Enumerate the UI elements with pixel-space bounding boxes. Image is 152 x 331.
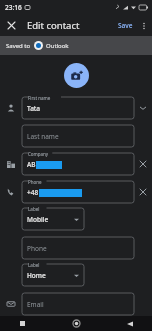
staticText: 23:16	[5, 3, 22, 12]
button[interactable]: Phone	[22, 237, 134, 259]
staticText: First name	[28, 95, 51, 101]
staticText: Label	[28, 262, 40, 268]
button[interactable]: Recent apps	[16, 317, 29, 330]
staticText: Phone	[28, 179, 42, 185]
button[interactable]: Home	[70, 317, 83, 330]
staticText: Company	[28, 151, 49, 157]
staticText: Outlook	[46, 42, 69, 50]
staticText: Mobile	[27, 215, 49, 224]
button[interactable]: Clear field	[134, 153, 152, 175]
staticText: Tata	[27, 104, 41, 113]
staticText: Last name	[27, 132, 59, 141]
button[interactable]: Saved to	[0, 36, 152, 55]
staticText: Saved to	[6, 42, 31, 50]
button[interactable]: Email	[22, 293, 134, 315]
button[interactable]: Save	[115, 17, 136, 34]
staticText: Label	[28, 206, 40, 212]
button[interactable]: Close	[3, 17, 19, 33]
button[interactable]: Label	[22, 264, 84, 286]
staticText: Edit contact	[27, 19, 80, 32]
staticText: Home	[27, 271, 46, 280]
button[interactable]: Last name	[22, 125, 134, 147]
staticText: Save	[118, 21, 133, 30]
button[interactable]: Add photo	[64, 63, 89, 88]
button[interactable]: More options	[137, 19, 150, 32]
staticText: AB	[27, 160, 36, 169]
button[interactable]: Phone	[22, 181, 134, 203]
button[interactable]: Label	[22, 208, 84, 230]
button[interactable]: Clear field	[134, 181, 152, 203]
staticText: Phone	[27, 244, 47, 253]
button[interactable]: Back	[123, 317, 136, 330]
button[interactable]: First name	[22, 97, 134, 119]
button[interactable]: Expand name	[134, 97, 152, 119]
staticText: +48	[27, 188, 39, 197]
staticText: Email	[27, 300, 44, 309]
button[interactable]: Company	[22, 153, 134, 175]
